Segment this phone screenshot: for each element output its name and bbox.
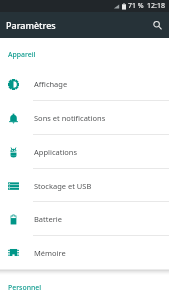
button[interactable]: Mémoire	[0, 236, 169, 269]
button[interactable]: Applications	[0, 135, 169, 169]
button[interactable]: Rechercher	[146, 14, 168, 36]
staticText: Personnel	[8, 283, 42, 292]
staticText: Affichage	[34, 79, 68, 89]
staticText: 12:18	[147, 1, 165, 11]
staticText: Sons et notifications	[34, 113, 106, 123]
staticText: Batterie	[34, 214, 62, 224]
staticText: Stockage et USB	[34, 181, 92, 191]
staticText: Paramètres	[6, 19, 56, 31]
button[interactable]: Affichage	[0, 67, 169, 101]
button[interactable]: Batterie	[0, 202, 169, 236]
staticText: 71 %	[128, 1, 144, 11]
staticText: Applications	[34, 147, 78, 157]
staticText: Mémoire	[34, 248, 66, 258]
button[interactable]: Stockage et USB	[0, 169, 169, 202]
button[interactable]: Sons et notifications	[0, 101, 169, 135]
staticText: Appareil	[8, 50, 36, 59]
